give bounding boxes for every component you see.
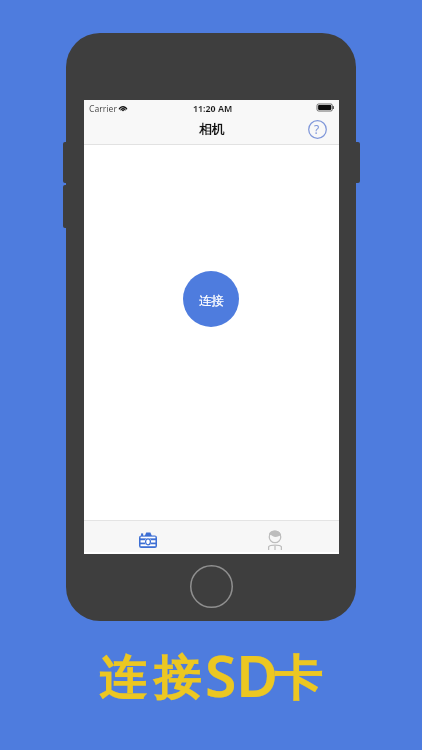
staticText: Carrier (89, 103, 117, 115)
staticText: 卡 (274, 649, 322, 709)
staticText: 连接 (199, 293, 224, 309)
staticText: 连接 (99, 649, 208, 708)
other: Home (190, 565, 233, 608)
button[interactable]: 连接 (183, 271, 239, 327)
staticText: ? (314, 121, 320, 137)
staticText: 11:20 AM (193, 103, 233, 115)
staticText: 相机 (199, 122, 225, 138)
staticText: SD (205, 636, 279, 714)
button[interactable]: Camera (84, 521, 211, 552)
button[interactable]: Help (306, 118, 328, 140)
button[interactable]: Profile (211, 521, 339, 552)
